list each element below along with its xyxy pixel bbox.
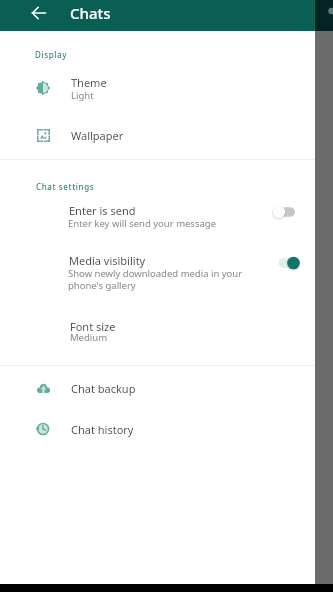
- staticText: Light: [71, 89, 94, 102]
- button[interactable]: Font size: [0, 317, 333, 355]
- button[interactable]: Enter is send: [0, 202, 333, 242]
- staticText: Enter is send: [69, 203, 136, 218]
- button[interactable]: Media visibility: [0, 252, 333, 302]
- button[interactable]: Wallpaper: [0, 120, 333, 154]
- button[interactable]: Chat history: [0, 414, 333, 450]
- staticText: Media visibility: [69, 253, 146, 268]
- staticText: phone's gallery: [68, 279, 136, 292]
- button[interactable]: Theme: [0, 70, 333, 110]
- button[interactable]: Back: [31, 5, 47, 21]
- staticText: Chats: [70, 3, 111, 23]
- staticText: Font size: [70, 319, 116, 334]
- staticText: Display: [35, 49, 68, 60]
- staticText: Wallpaper: [71, 128, 124, 143]
- staticText: Show newly downloaded media in your: [68, 267, 243, 280]
- button[interactable]: Chat backup: [0, 374, 333, 410]
- staticText: Medium: [70, 331, 108, 344]
- staticText: Chat history: [71, 422, 134, 437]
- staticText: Chat backup: [71, 381, 136, 396]
- staticText: Chat settings: [36, 181, 95, 192]
- button[interactable]: Media visibility toggle: [271, 255, 301, 271]
- staticText: Enter key will send your message: [68, 217, 217, 230]
- staticText: Theme: [71, 75, 107, 90]
- button[interactable]: Enter is send toggle: [271, 204, 301, 220]
